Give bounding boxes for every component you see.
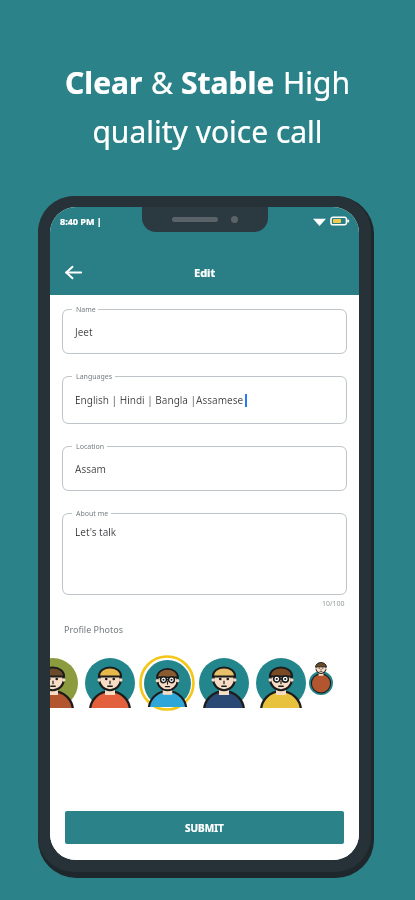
button[interactable]: Languages	[62, 376, 347, 424]
button[interactable]: Profile photo 5	[252, 651, 309, 715]
button[interactable]: Profile photo 3	[138, 651, 195, 715]
button[interactable]: Profile photo 2	[81, 651, 138, 715]
button[interactable]: Profile photo 4	[195, 651, 252, 715]
staticText: High	[283, 62, 350, 103]
staticText: &	[151, 62, 181, 103]
staticText: Edit	[194, 265, 216, 280]
button[interactable]: SUBMIT	[65, 811, 344, 844]
staticText: Location	[76, 442, 105, 452]
staticText: 8:40 PM |	[60, 215, 102, 227]
staticText: Jeet	[75, 325, 93, 339]
button[interactable]: Back	[50, 249, 96, 295]
button[interactable]: About me	[62, 513, 347, 595]
button[interactable]: Profile photo 1	[50, 651, 81, 715]
staticText: Name	[76, 305, 96, 315]
staticText: About me	[76, 509, 109, 519]
staticText: Stable	[181, 62, 283, 103]
staticText: Profile Photos	[64, 623, 124, 635]
staticText: Assam	[75, 462, 106, 476]
button[interactable]: Name	[62, 309, 347, 354]
button[interactable]: Profile photo 6	[309, 651, 333, 715]
staticText: Languages	[76, 372, 113, 382]
staticText: English | Hindi | Bangla |Assamese	[75, 393, 244, 407]
staticText: Let's talk	[75, 525, 117, 539]
staticText: 10/100	[322, 599, 345, 609]
staticText: SUBMIT	[185, 821, 224, 835]
staticText: Clear	[65, 62, 151, 103]
staticText: quality voice call	[92, 111, 323, 152]
button[interactable]: Location	[62, 446, 347, 491]
